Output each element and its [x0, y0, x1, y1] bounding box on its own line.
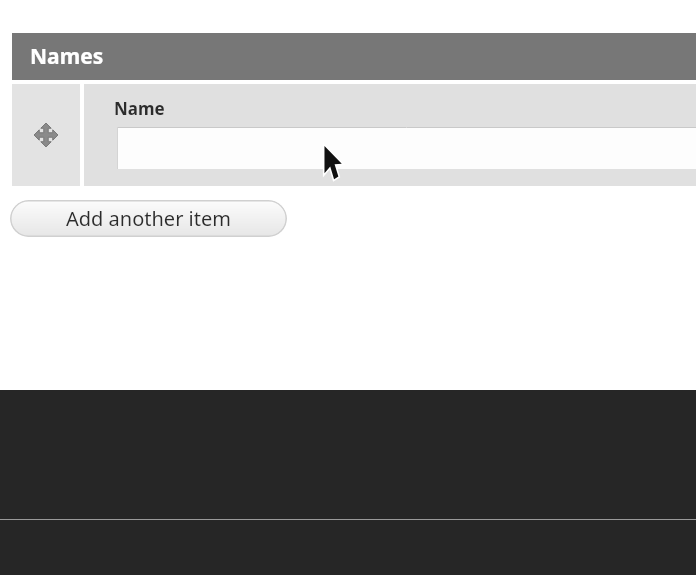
button[interactable]: Names: [12, 33, 696, 80]
button[interactable]: [117, 127, 696, 169]
button[interactable]: Drag to re-order: [12, 84, 80, 186]
staticText: Name: [114, 97, 165, 120]
staticText: Names: [30, 42, 104, 71]
staticText: Add another item: [66, 205, 231, 232]
button[interactable]: Add another item: [10, 200, 287, 237]
